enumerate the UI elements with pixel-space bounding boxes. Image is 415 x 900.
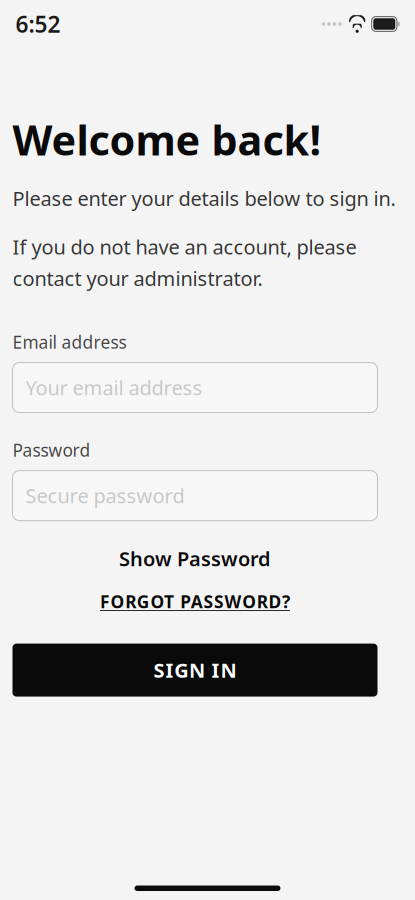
- staticText: Password: [12, 439, 90, 462]
- staticText: FORGOT PASSWORD?: [100, 590, 290, 613]
- staticText: Show Password: [119, 545, 271, 572]
- staticText: SIGN IN: [154, 657, 236, 683]
- button[interactable]: FORGOT PASSWORD?: [12, 587, 377, 617]
- button[interactable]: SIGN IN: [12, 644, 377, 697]
- button[interactable]: Show Password: [12, 542, 377, 576]
- staticText: If you do not have an account, please co…: [12, 233, 356, 291]
- staticText: Secure password: [25, 482, 184, 509]
- staticText: Please enter your details below to sign …: [12, 185, 395, 211]
- staticText: Email address: [12, 331, 126, 354]
- staticText: Your email address: [25, 374, 202, 401]
- staticText: Welcome back!: [12, 112, 321, 167]
- staticText: 6:52: [15, 9, 60, 39]
